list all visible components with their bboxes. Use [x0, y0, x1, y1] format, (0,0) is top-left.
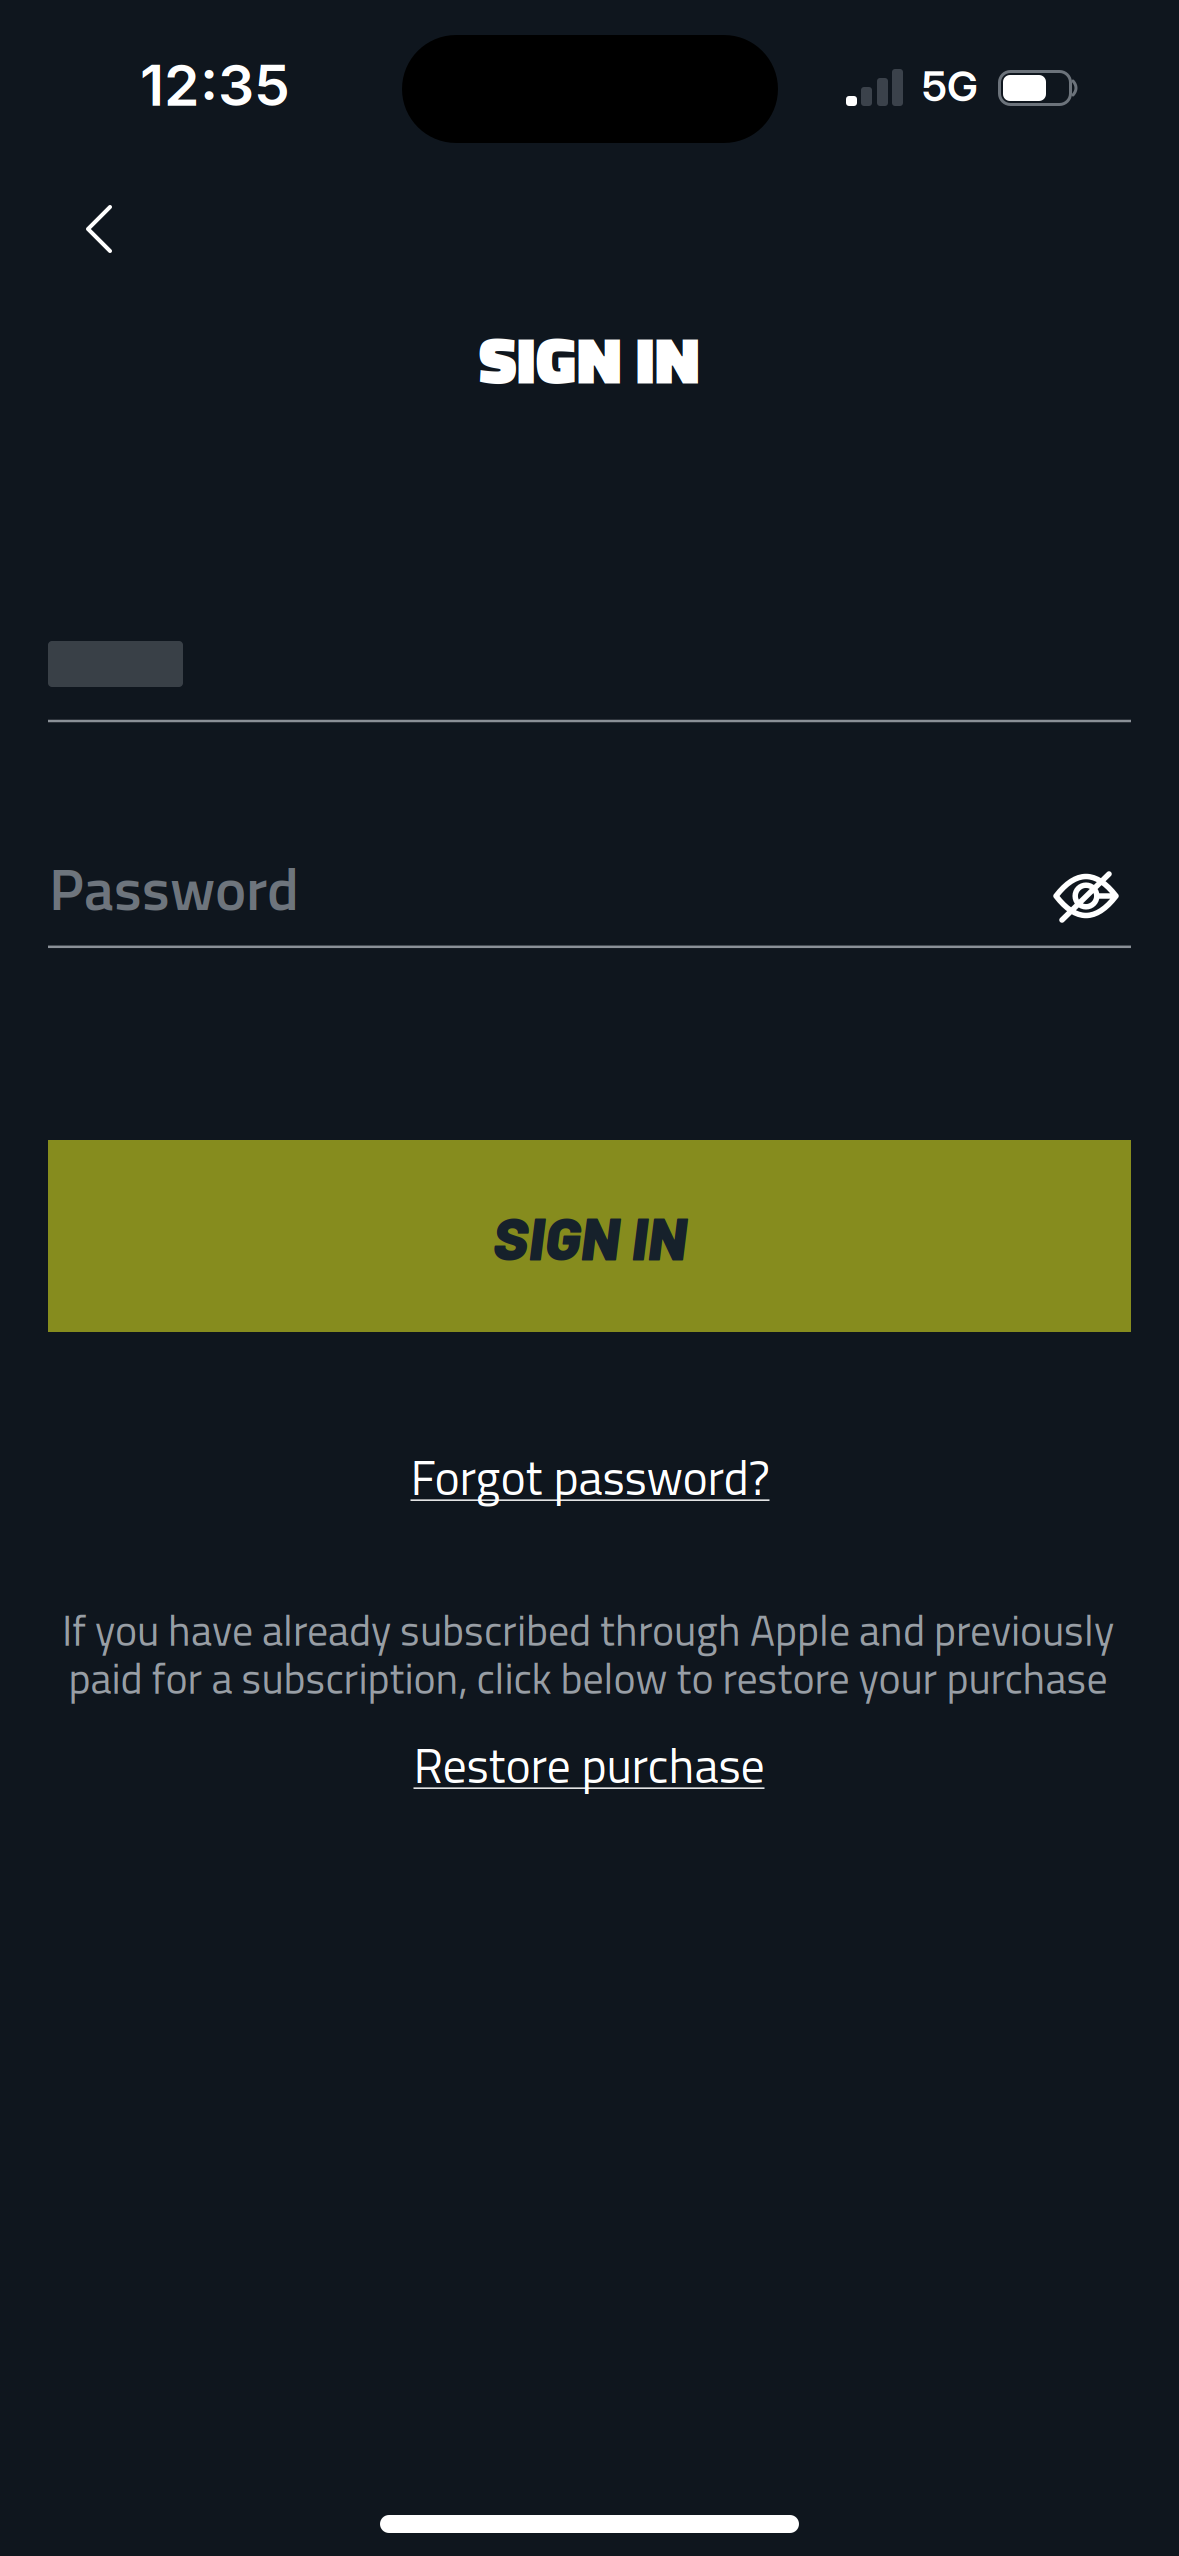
button[interactable]: Password [48, 828, 1131, 948]
button[interactable]: Email [48, 618, 1131, 722]
button[interactable]: SIGN IN [48, 1140, 1131, 1332]
staticText: 5G [922, 61, 978, 111]
button[interactable]: Forgot password? [400, 1430, 779, 1523]
button[interactable]: Restore purchase [403, 1718, 774, 1811]
staticText: Restore purchase [413, 1728, 764, 1801]
button[interactable]: Show password [1041, 854, 1131, 938]
staticText: 12:35 [140, 50, 290, 119]
staticText: SIGN IN [478, 309, 699, 409]
staticText: paid for a subscription, click below to … [68, 1646, 1107, 1710]
staticText: If you have already subscribed through A… [62, 1598, 1114, 1662]
button[interactable]: Back [66, 185, 132, 273]
staticText: Password [49, 843, 299, 933]
staticText: Forgot password? [410, 1440, 769, 1513]
staticText: SIGN IN [492, 1199, 686, 1273]
